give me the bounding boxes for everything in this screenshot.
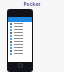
button[interactable] (8, 43, 32, 46)
button[interactable] (8, 49, 32, 52)
button[interactable] (8, 31, 32, 34)
button[interactable] (8, 46, 32, 49)
button[interactable] (8, 52, 32, 55)
button[interactable] (8, 40, 32, 43)
button[interactable] (8, 25, 32, 28)
button[interactable] (8, 37, 32, 40)
button[interactable] (8, 28, 32, 31)
button[interactable] (8, 22, 32, 25)
staticText: Pocket (23, 1, 41, 8)
button[interactable] (8, 34, 32, 37)
